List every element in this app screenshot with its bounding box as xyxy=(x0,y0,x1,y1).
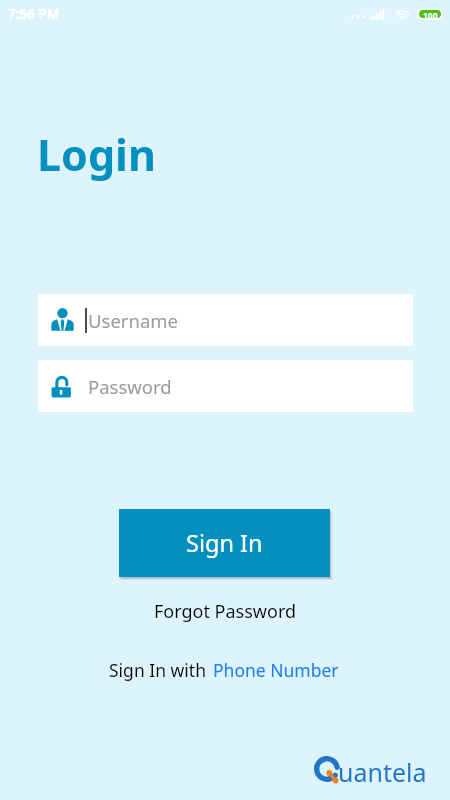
staticText: 7:56 PM xyxy=(8,5,60,23)
staticText: Phone Number xyxy=(213,658,339,682)
staticText: Sign In xyxy=(186,527,263,559)
button[interactable]: Quantela logo xyxy=(313,752,425,784)
staticText: Username xyxy=(88,308,179,333)
staticText: Forgot Password xyxy=(154,599,297,624)
staticText: Sign In with xyxy=(109,658,206,682)
staticText: Password xyxy=(88,374,172,399)
button[interactable]: Password xyxy=(38,360,413,412)
staticText: uantela xyxy=(338,755,427,787)
button[interactable]: Sign In xyxy=(119,509,330,577)
button[interactable]: Username xyxy=(38,294,413,346)
button[interactable]: Forgot Password xyxy=(142,593,309,630)
staticText: 100 xyxy=(423,10,438,18)
button[interactable]: Phone Number xyxy=(206,653,341,687)
staticText: Login xyxy=(37,125,156,184)
